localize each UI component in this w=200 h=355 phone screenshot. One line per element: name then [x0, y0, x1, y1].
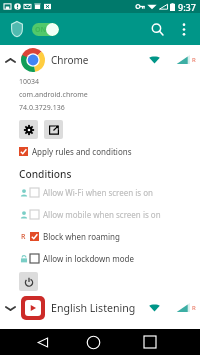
button[interactable]: Allow mobile when screen is on — [0, 203, 200, 225]
button[interactable]: Search — [144, 16, 170, 42]
staticText: Chrome — [51, 53, 89, 67]
button[interactable]: Power — [19, 272, 38, 291]
staticText: English Listening — [51, 301, 136, 315]
staticText: R — [21, 232, 26, 241]
staticText: 10034 — [19, 77, 40, 87]
button[interactable]: Chrome — [0, 45, 200, 74]
staticText: ON — [35, 25, 47, 35]
staticText: 9:37 — [178, 1, 196, 13]
staticText: Allow Wi-Fi when screen is on — [43, 187, 154, 198]
button[interactable]: Enable firewall — [32, 23, 59, 36]
staticText: 74.0.3729.136 — [19, 103, 65, 113]
staticText: com.android.chrome — [19, 90, 88, 100]
button[interactable]: Allow in lockdown mode — [0, 247, 200, 269]
staticText: Allow mobile when screen is on — [43, 209, 161, 220]
staticText: R — [192, 304, 196, 312]
staticText: R — [192, 56, 196, 64]
button[interactable]: Home — [80, 329, 106, 355]
staticText: Conditions — [19, 167, 72, 181]
button[interactable]: Open app — [44, 120, 63, 139]
staticText: Apply rules and conditions — [32, 146, 132, 157]
staticText: Block when roaming — [43, 231, 120, 242]
button[interactable]: Recent apps — [137, 329, 163, 355]
staticText: Allow in lockdown mode — [43, 253, 135, 264]
button[interactable]: Allow Wi-Fi when screen is on — [0, 181, 200, 203]
button[interactable]: R — [0, 225, 200, 247]
button[interactable]: Apply rules and conditions — [19, 145, 132, 158]
button[interactable]: App settings — [19, 120, 38, 139]
button[interactable]: Protection status — [9, 19, 25, 39]
button[interactable]: English Listening — [0, 292, 200, 323]
button[interactable]: Back — [30, 329, 56, 355]
button[interactable]: More options — [172, 17, 196, 41]
